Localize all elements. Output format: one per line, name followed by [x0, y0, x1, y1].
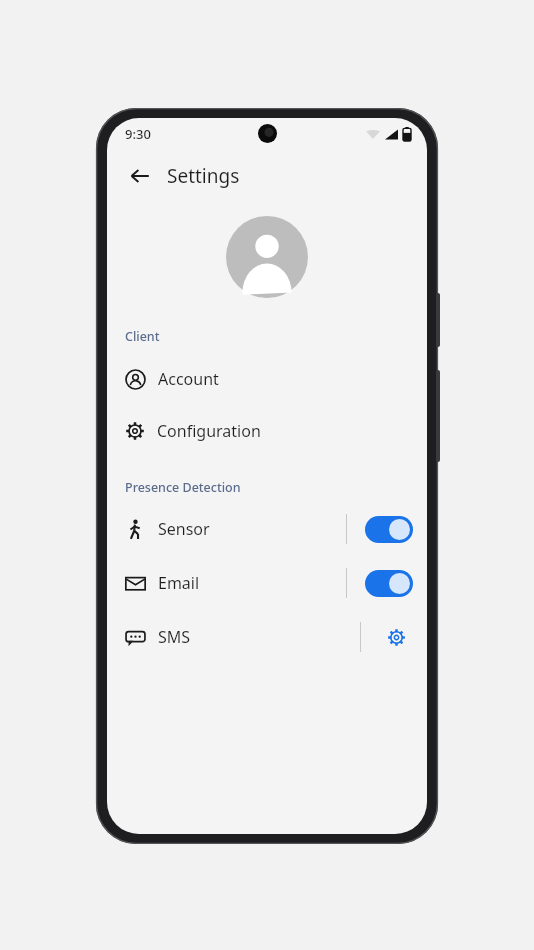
staticText: Account — [158, 368, 219, 390]
staticText: Client — [125, 328, 160, 345]
staticText: Presence Detection — [125, 479, 241, 496]
button[interactable]: Email — [107, 556, 427, 610]
button[interactable]: SMS — [107, 610, 427, 664]
button[interactable]: Toggle on — [365, 516, 413, 543]
staticText: Sensor — [158, 518, 346, 540]
button[interactable]: Configuration — [107, 405, 427, 457]
staticText: Settings — [167, 163, 240, 189]
button[interactable]: Back — [121, 157, 159, 195]
button[interactable]: Account — [107, 353, 427, 405]
button[interactable]: Sensor — [107, 502, 427, 556]
staticText: Email — [158, 572, 346, 594]
button[interactable]: Toggle on — [365, 570, 413, 597]
staticText: Configuration — [157, 420, 261, 442]
staticText: SMS — [158, 626, 360, 648]
staticText: 9:30 — [125, 125, 151, 143]
button[interactable]: SMS settings — [379, 620, 413, 654]
